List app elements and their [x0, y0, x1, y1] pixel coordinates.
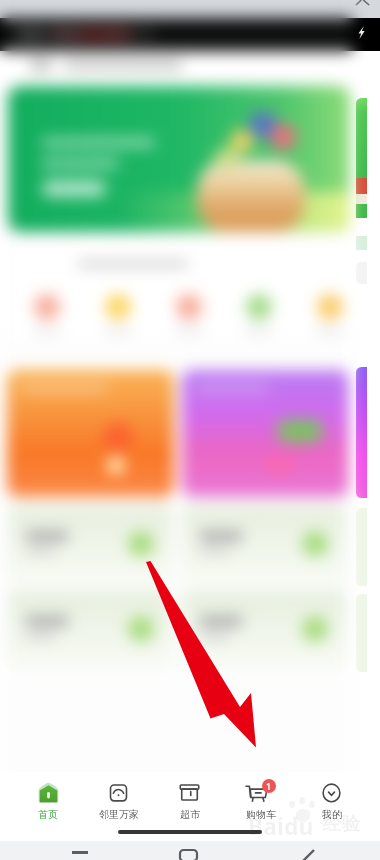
button[interactable]: 首页: [13, 778, 83, 824]
staticText: 邻里万家: [99, 808, 139, 821]
staticText: 经验: [322, 812, 360, 836]
button[interactable]: 超市: [154, 778, 225, 824]
button[interactable]: 1: [225, 778, 296, 824]
button[interactable]: 我的: [296, 778, 367, 824]
button[interactable]: 邻里万家: [83, 778, 154, 824]
staticText: 首页: [38, 808, 58, 821]
staticText: 购物车: [246, 808, 276, 821]
staticText: 超市: [180, 808, 200, 821]
staticText: Baidu: [248, 810, 314, 841]
staticText: 1: [266, 780, 272, 792]
staticText: 我的: [322, 808, 342, 821]
